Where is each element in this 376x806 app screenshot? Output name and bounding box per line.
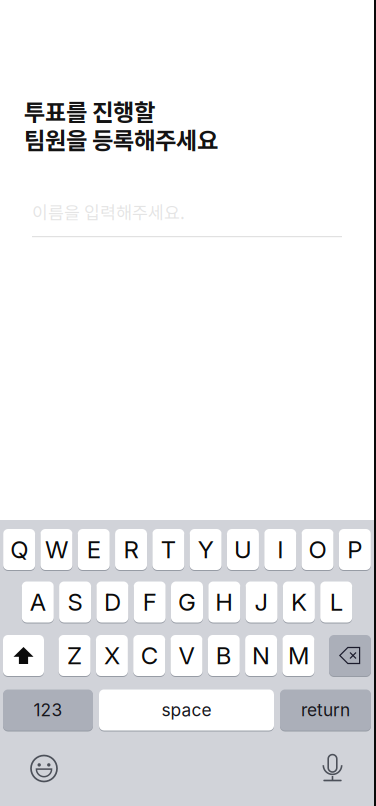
- staticText: F: [143, 587, 157, 616]
- button[interactable]: T: [152, 529, 184, 570]
- staticText: K: [291, 587, 307, 616]
- staticText: X: [104, 641, 120, 670]
- staticText: D: [104, 587, 121, 616]
- button[interactable]: B: [208, 635, 240, 676]
- staticText: J: [255, 587, 269, 616]
- button[interactable]: Shift: [3, 635, 44, 676]
- button[interactable]: O: [302, 529, 334, 570]
- staticText: O: [309, 535, 327, 564]
- staticText: T: [161, 535, 176, 564]
- staticText: W: [45, 535, 68, 564]
- button[interactable]: N: [245, 635, 277, 676]
- staticText: Q: [10, 535, 28, 564]
- staticText: space: [161, 699, 211, 720]
- staticText: U: [234, 535, 252, 564]
- staticText: A: [30, 587, 46, 616]
- staticText: S: [68, 587, 83, 616]
- button[interactable]: L: [320, 581, 352, 622]
- button[interactable]: Z: [59, 635, 91, 676]
- button[interactable]: return: [280, 689, 371, 730]
- button[interactable]: Y: [190, 529, 222, 570]
- button[interactable]: G: [171, 581, 203, 622]
- staticText: Z: [67, 641, 82, 670]
- button[interactable]: M: [282, 635, 314, 676]
- button[interactable]: E: [78, 529, 110, 570]
- button[interactable]: R: [115, 529, 147, 570]
- staticText: G: [178, 587, 196, 616]
- button[interactable]: W: [40, 529, 72, 570]
- button[interactable]: V: [170, 635, 202, 676]
- button[interactable]: P: [339, 529, 371, 570]
- staticText: E: [87, 535, 101, 564]
- button[interactable]: D: [96, 581, 128, 622]
- button[interactable]: S: [59, 581, 91, 622]
- staticText: 팀원을 등록해주세요: [24, 122, 218, 156]
- button[interactable]: Dictation: [308, 740, 357, 796]
- staticText: R: [123, 535, 138, 564]
- button[interactable]: A: [22, 581, 54, 622]
- staticText: B: [216, 641, 232, 670]
- button[interactable]: C: [133, 635, 165, 676]
- button[interactable]: J: [246, 581, 278, 622]
- staticText: I: [277, 535, 283, 564]
- staticText: L: [330, 587, 343, 616]
- staticText: N: [252, 641, 270, 670]
- button[interactable]: Q: [3, 529, 35, 570]
- staticText: return: [301, 699, 350, 720]
- staticText: M: [288, 641, 309, 670]
- button[interactable]: Delete: [329, 635, 371, 676]
- staticText: 이름을 입력해주세요.: [32, 199, 185, 224]
- button[interactable]: I: [264, 529, 296, 570]
- button[interactable]: X: [96, 635, 128, 676]
- staticText: P: [347, 535, 362, 564]
- button[interactable]: K: [283, 581, 315, 622]
- button[interactable]: H: [208, 581, 240, 622]
- staticText: H: [215, 587, 233, 616]
- staticText: V: [178, 641, 194, 670]
- button[interactable]: Emoji: [17, 740, 71, 796]
- button[interactable]: U: [227, 529, 259, 570]
- staticText: 123: [33, 699, 62, 720]
- staticText: 투표를 진행할: [24, 94, 155, 128]
- button[interactable]: space: [99, 689, 274, 730]
- button[interactable]: F: [134, 581, 166, 622]
- button[interactable]: 123: [3, 689, 93, 730]
- staticText: C: [141, 641, 158, 670]
- staticText: Y: [198, 535, 214, 564]
